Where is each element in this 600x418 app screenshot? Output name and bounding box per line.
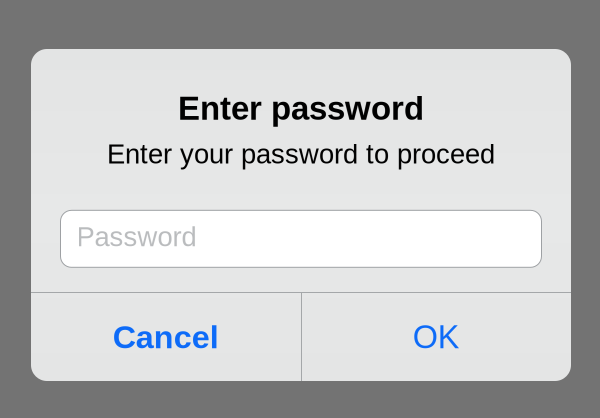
button[interactable]: Cancel xyxy=(31,293,300,381)
staticText: Password xyxy=(76,222,196,252)
staticText: Enter your password to proceed xyxy=(107,139,495,169)
staticText: Cancel xyxy=(113,319,219,355)
staticText: Enter password xyxy=(178,90,424,127)
button[interactable]: OK xyxy=(301,293,571,381)
staticText: OK xyxy=(413,319,460,355)
